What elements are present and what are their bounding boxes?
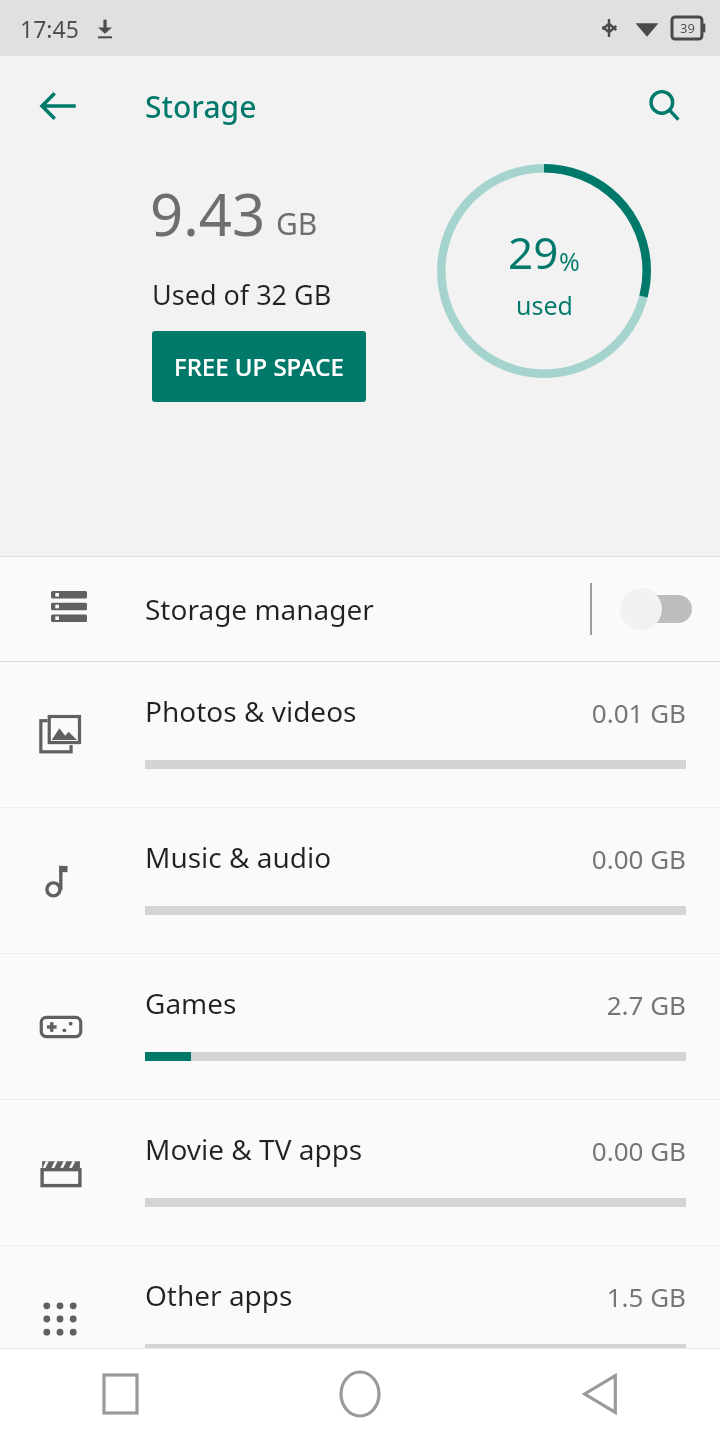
staticText: 0.00 GB <box>591 1133 686 1168</box>
button[interactable]: Back <box>22 70 94 142</box>
staticText: 0.01 GB <box>591 695 686 730</box>
button[interactable]: Storage manager <box>0 557 720 661</box>
staticText: Storage manager <box>145 590 590 628</box>
button[interactable]: Games <box>0 954 720 1100</box>
staticText: 1.5 GB <box>606 1279 686 1314</box>
staticText: Movie & TV apps <box>145 1130 363 1168</box>
staticText: Photos & videos <box>145 692 357 730</box>
staticText: % <box>559 244 580 278</box>
staticText: 29 <box>508 222 559 282</box>
staticText: 0.00 GB <box>591 841 686 876</box>
button[interactable]: Recent apps <box>0 1348 240 1440</box>
staticText: used <box>516 288 573 322</box>
button[interactable]: FREE UP SPACE <box>152 331 366 402</box>
button[interactable]: Photos & videos <box>0 662 720 808</box>
staticText: Storage <box>145 86 257 127</box>
staticText: GB <box>276 203 318 244</box>
staticText: FREE UP SPACE <box>174 350 344 383</box>
button[interactable]: Storage manager toggle <box>592 557 720 661</box>
button[interactable]: Search <box>628 70 700 142</box>
staticText: 39 <box>680 19 695 37</box>
button[interactable]: Back <box>480 1348 720 1440</box>
staticText: Music & audio <box>145 838 332 876</box>
staticText: 17:45 <box>20 13 79 44</box>
button[interactable]: Other apps <box>0 1246 720 1392</box>
button[interactable]: Music & audio <box>0 808 720 954</box>
staticText: Other apps <box>145 1276 293 1314</box>
button[interactable]: Home <box>240 1348 480 1440</box>
staticText: 9.43 <box>150 174 266 253</box>
staticText: 2.7 GB <box>606 987 686 1022</box>
staticText: Games <box>145 984 237 1022</box>
button[interactable]: Movie & TV apps <box>0 1100 720 1246</box>
staticText: Used of 32 GB <box>152 276 332 313</box>
